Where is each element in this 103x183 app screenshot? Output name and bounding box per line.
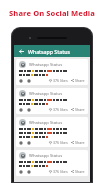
staticText: Share <box>75 107 85 112</box>
button[interactable]: WhatsApp <box>19 141 23 145</box>
button[interactable]: 376 likes <box>49 169 68 174</box>
button[interactable]: 376 likes <box>49 140 68 145</box>
button[interactable]: WhatsApp <box>19 170 23 174</box>
staticText: Share <box>75 140 85 145</box>
button[interactable]: Back <box>17 47 25 55</box>
staticText: Whatsapp Status <box>29 153 63 159</box>
staticText: Whatsapp Status <box>28 48 70 55</box>
staticText: 376 likes <box>53 107 68 112</box>
staticText: Share <box>75 78 85 83</box>
button[interactable]: Whatsapp Status <box>16 88 88 114</box>
staticText: 376 likes <box>53 140 68 145</box>
staticText: Whatsapp Status <box>29 91 63 97</box>
button[interactable]: Share <box>71 107 85 112</box>
button[interactable]: 376 likes <box>49 107 68 112</box>
button[interactable]: Share <box>71 140 85 145</box>
button[interactable]: Whatsapp Status <box>16 59 88 85</box>
button[interactable]: Share <box>71 169 85 174</box>
staticText: Whatsapp Status <box>29 120 63 126</box>
button[interactable]: Whatsapp Status <box>16 117 88 147</box>
button[interactable]: WhatsApp <box>19 79 23 83</box>
button[interactable]: Facebook <box>27 108 31 112</box>
staticText: Share <box>75 169 85 174</box>
button[interactable]: Facebook <box>27 170 31 174</box>
button[interactable]: Facebook <box>27 141 31 145</box>
button[interactable]: WhatsApp <box>19 108 23 112</box>
staticText: 376 likes <box>53 78 68 83</box>
staticText: 376 likes <box>53 169 68 174</box>
staticText: Share On Social Media <box>9 8 95 18</box>
button[interactable]: Facebook <box>27 79 31 83</box>
button[interactable]: Whatsapp Status <box>16 150 88 176</box>
button[interactable]: 376 likes <box>49 78 68 83</box>
button[interactable]: Share <box>71 78 85 83</box>
staticText: Whatsapp Status <box>29 62 63 68</box>
